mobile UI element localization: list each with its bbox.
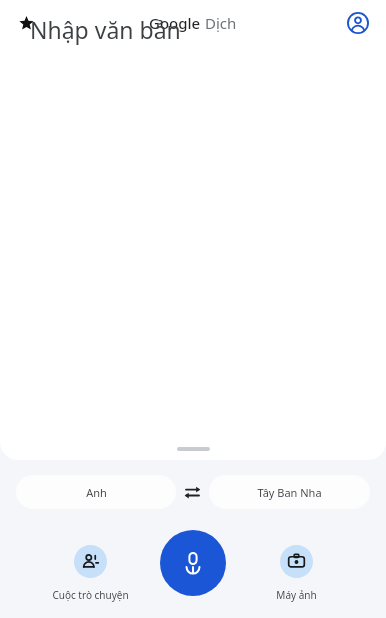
staticText: Máy ảnh: [276, 588, 317, 602]
button[interactable]: Swap languages: [176, 474, 209, 510]
button[interactable]: Voice input: [160, 530, 226, 596]
button[interactable]: Camera: [250, 545, 342, 602]
staticText: Nhập văn bản: [30, 14, 181, 45]
button[interactable]: Nhập văn bản: [30, 14, 386, 45]
button[interactable]: Tây Ban Nha: [209, 475, 370, 509]
staticText: Google: [149, 13, 201, 33]
staticText: Anh: [86, 485, 107, 500]
staticText: Tây Ban Nha: [257, 485, 322, 500]
button[interactable]: Saved: [8, 5, 44, 41]
button[interactable]: Conversation: [44, 545, 136, 602]
staticText: Cuộc trò chuyện: [52, 588, 129, 602]
staticText: Dịch: [205, 13, 237, 33]
button[interactable]: Anh: [16, 475, 176, 509]
button[interactable]: Account: [340, 5, 376, 41]
